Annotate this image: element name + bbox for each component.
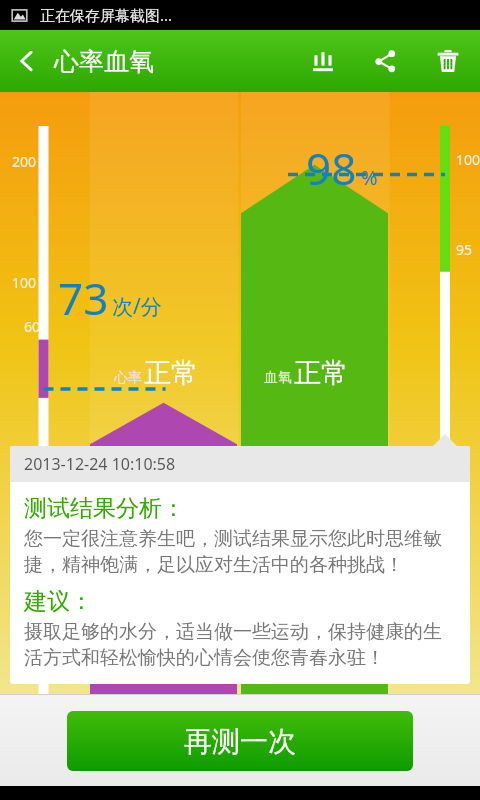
staticText: 正常 <box>144 356 198 390</box>
button[interactable]: History chart <box>292 30 354 92</box>
staticText: 2013-12-24 10:10:58 <box>24 453 176 475</box>
staticText: 100 <box>456 150 480 169</box>
button[interactable]: Share <box>354 30 416 92</box>
staticText: 心率血氧 <box>54 46 154 77</box>
staticText: 再测一次 <box>184 724 296 759</box>
staticText: 正常 <box>294 356 348 390</box>
staticText: 血氧 <box>264 369 292 387</box>
staticText: 测试结果分析： <box>24 494 185 523</box>
staticText: 次/分 <box>112 292 162 321</box>
staticText: 60 <box>24 317 41 336</box>
button[interactable]: Delete <box>416 30 480 92</box>
staticText: 95 <box>456 240 473 259</box>
staticText: 100 <box>12 273 37 292</box>
staticText: 98 <box>306 138 357 198</box>
staticText: 正在保存屏幕截图... <box>40 5 173 25</box>
staticText: 建议： <box>24 587 93 616</box>
button[interactable]: Back <box>0 30 54 92</box>
staticText: 心率 <box>114 369 142 387</box>
staticText: 73 <box>58 268 109 328</box>
staticText: 摄取足够的水分，适当做一些运动，保持健康的生活方式和轻松愉快的心情会使您青春永驻… <box>24 620 456 670</box>
staticText: 200 <box>12 152 37 171</box>
staticText: 您一定很注意养生吧，测试结果显示您此时思维敏捷，精神饱满，足以应对生活中的各种挑… <box>24 527 456 577</box>
staticText: % <box>361 164 378 191</box>
button[interactable]: 再测一次 <box>67 711 413 771</box>
